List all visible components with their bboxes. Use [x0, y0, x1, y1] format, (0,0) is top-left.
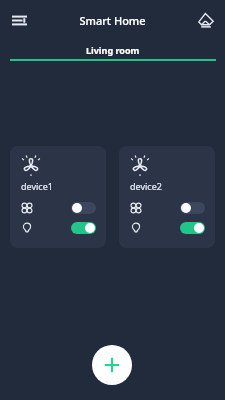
button[interactable]: device1 [10, 146, 106, 248]
button[interactable]: Light toggle [21, 221, 96, 235]
button[interactable]: Add device [92, 345, 132, 385]
button[interactable]: device2 [119, 146, 215, 248]
staticText: device2 [130, 180, 162, 192]
staticText: Smart Home [79, 13, 146, 28]
staticText: Living room [86, 44, 140, 56]
button[interactable]: Fan toggle [130, 201, 205, 215]
button[interactable]: Erase [194, 8, 218, 32]
button[interactable]: Menu [7, 8, 31, 32]
button[interactable]: Off [180, 202, 205, 214]
button[interactable]: Light toggle [130, 221, 205, 235]
button[interactable]: Living room [10, 40, 225, 61]
button[interactable]: On [180, 222, 205, 234]
button[interactable]: On [71, 222, 96, 234]
button[interactable]: Fan toggle [21, 201, 96, 215]
staticText: device1 [21, 180, 53, 192]
button[interactable]: Off [71, 202, 96, 214]
